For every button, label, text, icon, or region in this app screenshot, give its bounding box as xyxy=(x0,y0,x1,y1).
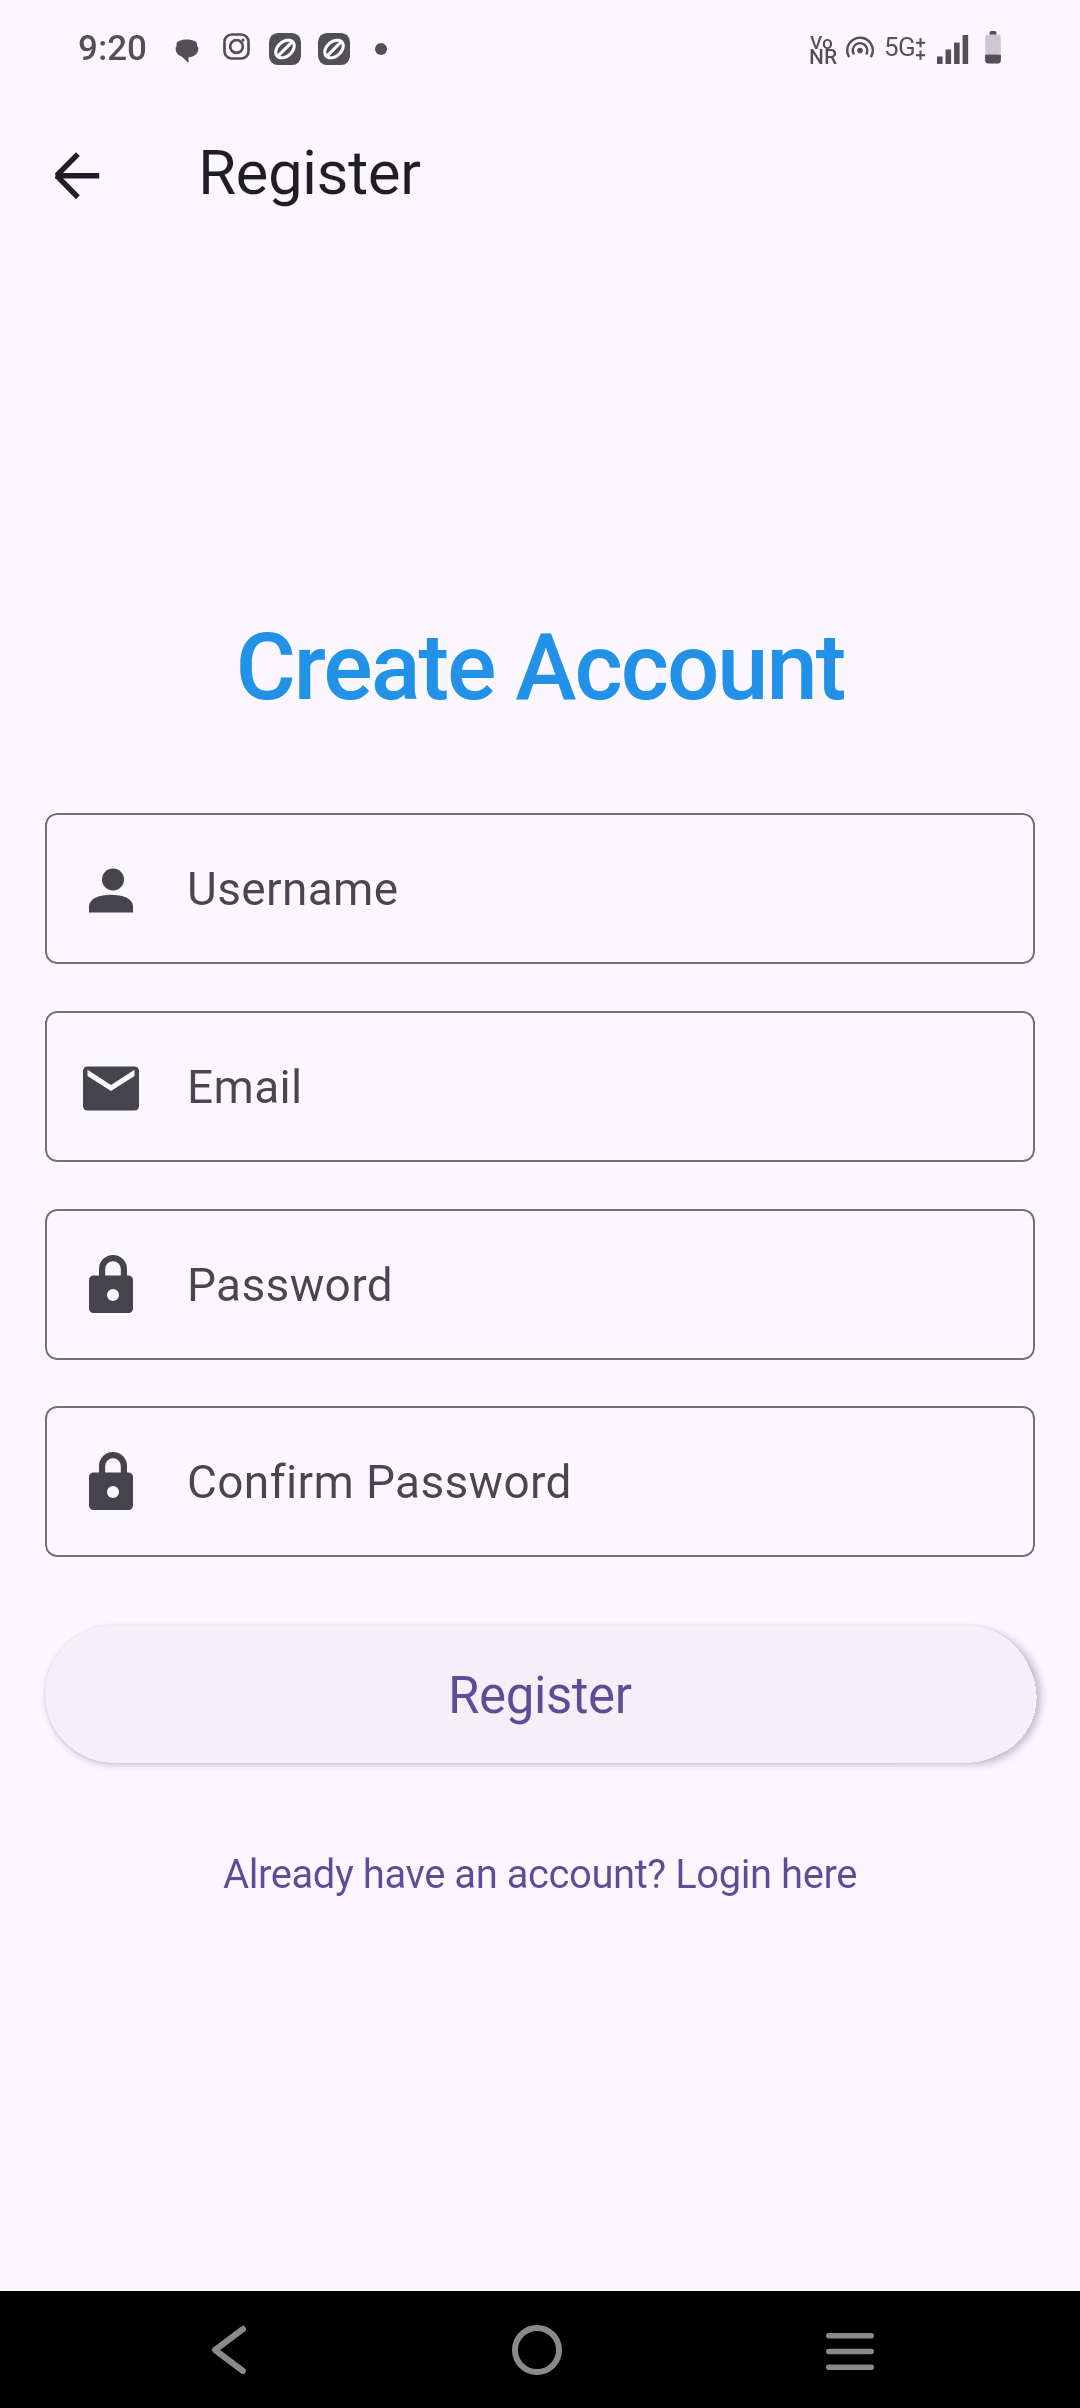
button[interactable]: Register xyxy=(45,1625,1035,1763)
button[interactable]: Recent apps xyxy=(770,2293,930,2408)
button[interactable]: Back xyxy=(149,2291,309,2408)
staticText: Vo xyxy=(810,31,833,53)
staticText: Confirm Password xyxy=(187,1455,572,1509)
staticText: 5G xyxy=(884,32,916,62)
staticText: Email xyxy=(187,1060,303,1114)
button[interactable]: Username xyxy=(45,813,1035,964)
button[interactable]: Password xyxy=(45,1209,1035,1360)
staticText: Register xyxy=(198,136,421,209)
button[interactable]: Back xyxy=(32,130,120,218)
button[interactable]: Email xyxy=(45,1011,1035,1162)
button[interactable]: Home xyxy=(457,2291,617,2408)
staticText: NR xyxy=(809,45,838,70)
button[interactable]: Already have an account? Login here xyxy=(0,1851,1080,1898)
button[interactable]: Confirm Password xyxy=(45,1406,1035,1557)
staticText: 9:20 xyxy=(78,28,147,69)
staticText: Password xyxy=(187,1258,393,1312)
staticText: Username xyxy=(187,862,399,916)
staticText: Create Account xyxy=(0,614,1080,722)
staticText: Register xyxy=(448,1666,632,1726)
